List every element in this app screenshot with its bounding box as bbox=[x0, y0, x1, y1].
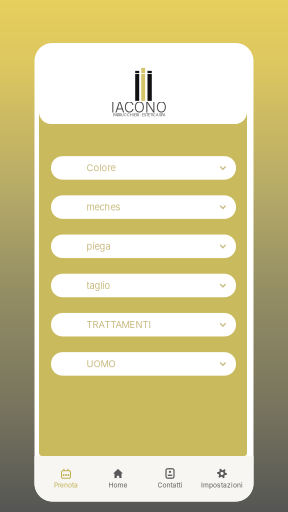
staticText: Home bbox=[108, 481, 127, 489]
staticText: PARRUCCHIERI · ESTETICA SPA bbox=[113, 113, 165, 117]
button[interactable]: Home bbox=[92, 457, 144, 501]
button[interactable]: meches bbox=[51, 195, 236, 219]
button[interactable]: piega bbox=[51, 235, 236, 258]
staticText: IACONO bbox=[111, 99, 167, 116]
staticText: Prenota bbox=[54, 481, 78, 489]
button[interactable]: Contatti bbox=[144, 457, 196, 501]
button[interactable]: Colore bbox=[51, 156, 236, 180]
staticText: UOMO bbox=[86, 358, 115, 370]
staticText: meches bbox=[86, 201, 120, 213]
button[interactable]: Prenota bbox=[40, 457, 92, 501]
button[interactable]: Impostazioni bbox=[196, 457, 248, 501]
button[interactable]: TRATTAMENTI bbox=[51, 313, 236, 336]
staticText: Colore bbox=[86, 162, 115, 174]
staticText: Impostazioni bbox=[201, 481, 243, 489]
staticText: TRATTAMENTI bbox=[86, 319, 151, 330]
button[interactable]: UOMO bbox=[51, 352, 236, 376]
staticText: Contatti bbox=[157, 481, 182, 489]
staticText: taglio bbox=[86, 280, 110, 291]
button[interactable]: taglio bbox=[51, 274, 236, 297]
staticText: piega bbox=[86, 241, 110, 252]
